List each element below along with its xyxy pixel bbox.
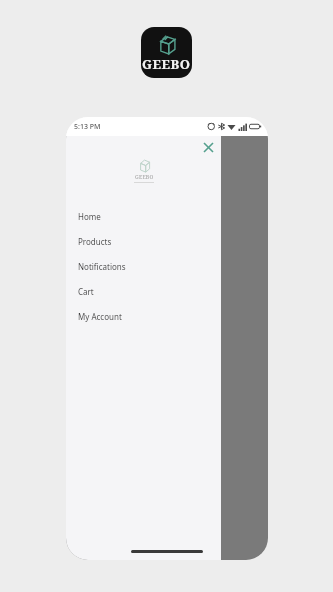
staticText: Products bbox=[78, 236, 112, 247]
button[interactable]: Notifications bbox=[66, 254, 221, 279]
button[interactable] bbox=[80, 458, 250, 484]
button[interactable]: Products bbox=[66, 229, 221, 254]
staticText: 5:13 PM bbox=[74, 122, 101, 132]
staticText: GEEBO bbox=[142, 55, 191, 73]
button[interactable] bbox=[66, 136, 268, 560]
staticText: My Account bbox=[78, 311, 122, 322]
button[interactable]: Cart bbox=[66, 279, 221, 304]
staticText: Notifications bbox=[78, 261, 126, 272]
staticText: Cart bbox=[78, 286, 94, 297]
staticText: Home bbox=[78, 211, 101, 222]
button[interactable]: GEEBO bbox=[141, 27, 192, 78]
staticText: GEEBO bbox=[135, 174, 154, 181]
button[interactable]: My Account bbox=[66, 304, 221, 329]
button[interactable]: Close menu bbox=[199, 138, 217, 156]
button[interactable]: Home bbox=[66, 204, 221, 229]
